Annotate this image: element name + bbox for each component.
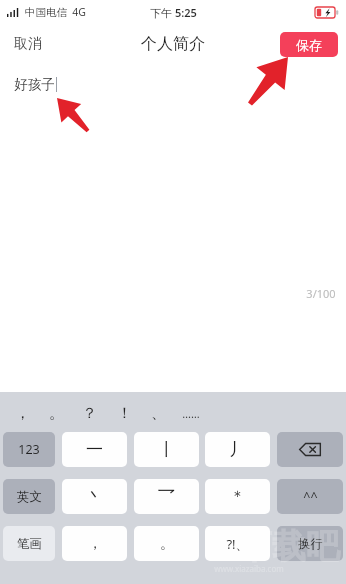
staticText: 好孩子 bbox=[14, 76, 55, 93]
staticText: 。 bbox=[49, 404, 64, 423]
button[interactable]: 丿 bbox=[205, 432, 270, 467]
button[interactable]: ， bbox=[7, 395, 37, 432]
staticText: 乛 bbox=[158, 486, 175, 507]
button[interactable]: 123 bbox=[3, 432, 55, 467]
staticText: 换行 bbox=[298, 536, 323, 552]
button[interactable]: 英文 bbox=[3, 479, 55, 514]
staticText: 3/100 bbox=[306, 286, 336, 301]
button[interactable]: ^^ bbox=[277, 479, 343, 514]
button[interactable]: Backspace bbox=[277, 432, 343, 467]
staticText: ， bbox=[15, 404, 30, 423]
staticText: 丿 bbox=[229, 439, 246, 460]
staticText: ， bbox=[88, 535, 102, 553]
staticText: 。 bbox=[160, 535, 174, 553]
button[interactable]: 换行 bbox=[277, 526, 343, 561]
button[interactable]: 保存 bbox=[280, 32, 338, 57]
button[interactable]: 。 bbox=[41, 395, 71, 432]
staticText: 、 bbox=[151, 404, 166, 423]
button[interactable]: 乛 bbox=[134, 479, 199, 514]
staticText: 个人简介 bbox=[141, 34, 205, 54]
button[interactable]: 。 bbox=[134, 526, 199, 561]
button[interactable]: 丶 bbox=[62, 479, 127, 514]
staticText: 123 bbox=[18, 441, 40, 458]
staticText: 4G bbox=[72, 5, 86, 19]
staticText: 下载吧 bbox=[238, 525, 340, 568]
staticText: 一 bbox=[86, 439, 103, 460]
button[interactable]: ？ bbox=[74, 395, 104, 432]
staticText: ！ bbox=[117, 404, 132, 423]
staticText: …… bbox=[182, 406, 200, 421]
staticText: ？ bbox=[82, 404, 97, 423]
staticText: ＊ bbox=[230, 487, 245, 506]
staticText: 丶 bbox=[86, 486, 103, 507]
staticText: ?!、 bbox=[226, 535, 249, 553]
button[interactable]: 笔画 bbox=[3, 526, 55, 561]
staticText: 英文 bbox=[17, 489, 42, 505]
staticText: 笔画 bbox=[17, 536, 42, 552]
button[interactable]: ＊ bbox=[205, 479, 270, 514]
button[interactable]: 一 bbox=[62, 432, 127, 467]
staticText: www.xiazaiba.com bbox=[214, 563, 284, 574]
staticText: 丨 bbox=[158, 439, 175, 460]
staticText: ^^ bbox=[303, 488, 318, 505]
staticText: 保存 bbox=[296, 37, 322, 53]
button[interactable]: …… bbox=[176, 395, 206, 432]
staticText: 下午 5:25 bbox=[150, 5, 197, 20]
staticText: 取消 bbox=[14, 35, 42, 53]
button[interactable]: 取消 bbox=[0, 27, 56, 61]
button[interactable]: 、 bbox=[143, 395, 173, 432]
button[interactable]: ， bbox=[62, 526, 127, 561]
button[interactable]: 丨 bbox=[134, 432, 199, 467]
staticText: 中国电信 bbox=[25, 6, 67, 19]
button[interactable]: ！ bbox=[109, 395, 139, 432]
button[interactable]: ?!、 bbox=[205, 526, 270, 561]
